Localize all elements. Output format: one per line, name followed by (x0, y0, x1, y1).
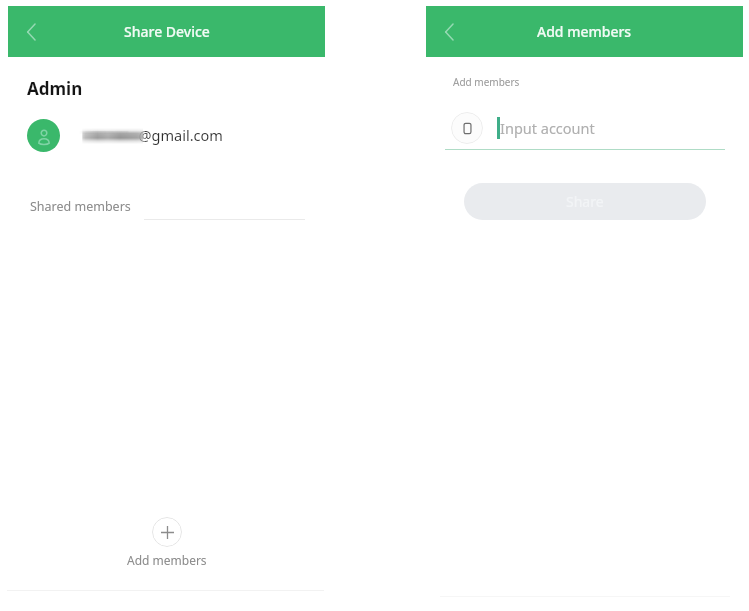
staticText: Shared members (30, 198, 131, 215)
staticText: Input account (500, 118, 595, 138)
button[interactable]: @gmail.com (8, 112, 325, 158)
staticText: Admin (27, 77, 83, 100)
staticText: Share (566, 192, 604, 211)
staticText: @gmail.com (82, 125, 223, 145)
staticText: Add members (537, 22, 632, 41)
staticText: Share Device (124, 22, 210, 41)
button[interactable]: Add members (107, 517, 227, 568)
button[interactable]: Back (20, 12, 60, 52)
button[interactable]: Share (464, 183, 706, 220)
staticText: Add members (453, 75, 520, 89)
button[interactable]: Back (438, 12, 478, 52)
staticText: Add members (127, 552, 207, 568)
button[interactable]: Phone number (451, 112, 483, 144)
